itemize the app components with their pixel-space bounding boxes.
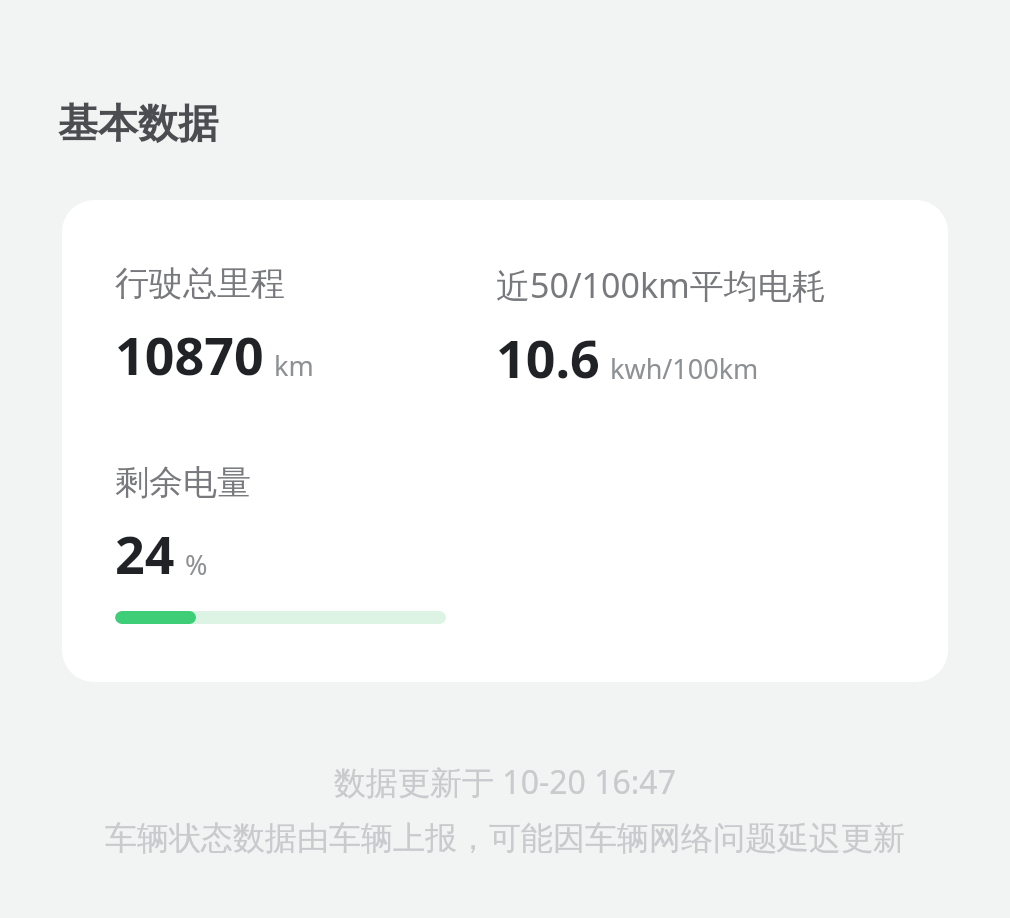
staticText: km [274, 347, 314, 384]
staticText: 数据更新于 10-20 16:47 [0, 760, 1010, 804]
staticText: 近50/100km平均电耗 [496, 262, 826, 308]
staticText: 10870 [115, 319, 264, 390]
staticText: kwh/100km [610, 350, 759, 387]
staticText: 基本数据 [58, 98, 218, 148]
staticText: % [185, 546, 208, 583]
staticText: 剩余电量 [115, 461, 251, 504]
staticText: 行驶总里程 [115, 262, 285, 305]
staticText: 10.6 [496, 322, 600, 393]
staticText: 车辆状态数据由车辆上报，可能因车辆网络问题延迟更新 [0, 818, 1010, 858]
staticText: 24 [115, 518, 175, 589]
button[interactable]: 行驶总里程 [62, 200, 948, 682]
